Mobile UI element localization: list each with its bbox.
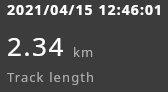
staticText: 2021/04/15 12:46:01 xyxy=(7,0,164,19)
staticText: 2.34 xyxy=(7,28,65,63)
staticText: Track length xyxy=(7,68,96,86)
staticText: km xyxy=(73,43,95,61)
